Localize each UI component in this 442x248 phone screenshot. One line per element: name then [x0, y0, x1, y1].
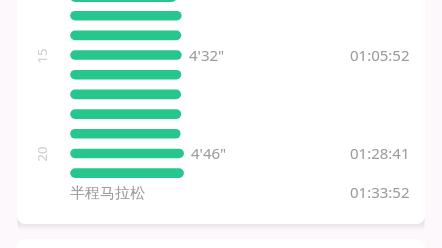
staticText: 15	[32, 48, 50, 63]
staticText: 01:05:52	[350, 45, 410, 65]
staticText: 20	[32, 146, 50, 161]
button[interactable]: Split pace chart	[17, 0, 425, 224]
staticText: 01:28:41	[350, 143, 410, 163]
staticText: 01:33:52	[350, 182, 410, 202]
staticText: 4'32"	[189, 45, 225, 65]
staticText: 4'46"	[191, 143, 227, 163]
staticText: 半程马拉松	[70, 184, 145, 203]
